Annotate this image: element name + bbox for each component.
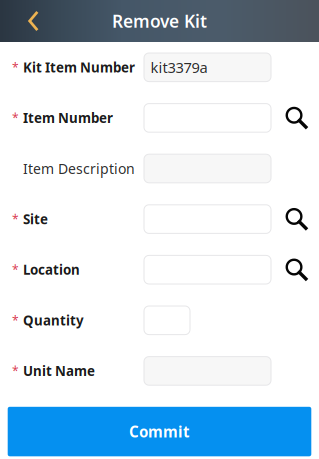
button[interactable]: Back xyxy=(12,0,55,42)
staticText: * xyxy=(12,59,19,75)
staticText: Remove Kit xyxy=(112,9,207,33)
button[interactable]: Location lookup xyxy=(277,250,316,289)
staticText: * xyxy=(12,110,19,126)
staticText: * xyxy=(12,261,19,278)
staticText: * xyxy=(12,312,19,328)
button[interactable]: Site lookup xyxy=(277,200,316,239)
button[interactable]: Commit xyxy=(8,407,311,456)
staticText: Commit xyxy=(129,421,190,442)
staticText: * xyxy=(12,211,19,227)
staticText: Unit Name xyxy=(23,362,95,380)
staticText: Item Description xyxy=(23,159,135,178)
button[interactable]: Item Number lookup xyxy=(277,98,316,137)
staticText: kit3379a xyxy=(150,57,207,77)
staticText: Item Number xyxy=(23,109,113,127)
staticText: Location xyxy=(23,261,80,279)
staticText: Kit Item Number xyxy=(23,58,135,76)
staticText: * xyxy=(12,363,19,379)
staticText: Site xyxy=(23,210,48,228)
staticText: Quantity xyxy=(23,311,84,329)
